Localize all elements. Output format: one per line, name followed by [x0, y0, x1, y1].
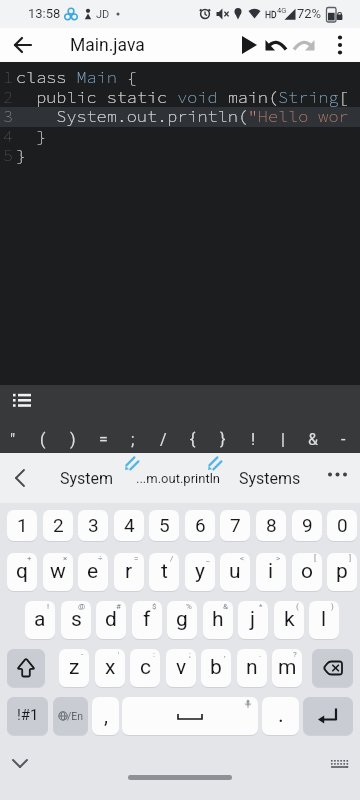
button[interactable]: c — [130, 649, 160, 687]
button[interactable]: n — [237, 649, 267, 687]
button[interactable] — [326, 755, 356, 781]
staticText: & — [308, 430, 318, 449]
staticText: c — [140, 655, 151, 680]
button[interactable]: { — [178, 426, 208, 452]
staticText: - — [81, 650, 84, 659]
staticText: < — [240, 554, 245, 563]
button[interactable] — [326, 28, 354, 62]
button[interactable] — [6, 28, 42, 62]
staticText: } — [220, 430, 226, 449]
button[interactable]: x — [95, 649, 125, 687]
button[interactable] — [320, 461, 356, 495]
button[interactable]: o — [292, 553, 322, 591]
staticText: 2 — [3, 86, 14, 107]
button[interactable]: 5 — [149, 510, 179, 541]
button[interactable]: h — [203, 601, 233, 639]
button[interactable]: / — [148, 426, 178, 452]
staticText: z — [69, 655, 80, 680]
button[interactable]: ; — [118, 426, 148, 452]
button[interactable] — [4, 463, 36, 493]
staticText: " — [10, 430, 16, 449]
button[interactable]: d — [96, 601, 126, 639]
staticText: [ — [314, 554, 317, 563]
button[interactable]: ) — [58, 426, 88, 452]
staticText: & — [223, 602, 228, 611]
button[interactable]: - — [328, 426, 358, 452]
button[interactable]: 9 — [292, 510, 322, 541]
staticText: t — [161, 559, 168, 584]
staticText: r — [125, 559, 133, 584]
button[interactable]: f — [132, 601, 162, 639]
button[interactable]: i — [256, 553, 286, 591]
button[interactable]: t — [149, 553, 179, 591]
staticText: Main.java — [70, 35, 145, 56]
button[interactable]: g — [167, 601, 197, 639]
button[interactable]: ! — [238, 426, 268, 452]
button[interactable]: 3 — [78, 510, 108, 541]
button[interactable]: b — [201, 649, 231, 687]
button[interactable]: | — [268, 426, 298, 452]
staticText: j — [250, 607, 256, 632]
staticText: # — [116, 602, 121, 611]
staticText: × — [63, 554, 68, 563]
button[interactable]: " — [0, 426, 28, 452]
staticText: x — [105, 655, 116, 680]
button[interactable]: z — [59, 649, 89, 687]
staticText: 72% — [297, 6, 322, 21]
button[interactable]: v — [166, 649, 196, 687]
button[interactable]: l — [309, 601, 339, 639]
staticText: h — [212, 607, 224, 632]
button[interactable]: k — [274, 601, 304, 639]
button[interactable]: /En — [53, 697, 88, 735]
staticText: 1 — [3, 66, 14, 87]
button[interactable]: a — [25, 601, 55, 639]
staticText: !#1 — [17, 706, 39, 724]
button[interactable]: ( — [28, 426, 58, 452]
button[interactable]: !#1 — [7, 697, 48, 735]
button[interactable]: y — [185, 553, 215, 591]
button[interactable] — [122, 697, 258, 735]
button[interactable]: r — [114, 553, 144, 591]
button[interactable] — [234, 28, 264, 62]
button[interactable] — [7, 649, 45, 687]
staticText: % — [186, 602, 192, 611]
staticText: ...m.out.println — [136, 471, 221, 486]
button[interactable]: e — [78, 553, 108, 591]
button[interactable]: 1 — [7, 510, 37, 541]
button[interactable]: . — [262, 697, 299, 735]
button[interactable]: System — [48, 461, 126, 495]
button[interactable]: s — [61, 601, 91, 639]
button[interactable] — [6, 389, 38, 413]
button[interactable]: 6 — [185, 510, 215, 541]
staticText: y — [195, 559, 205, 584]
staticText: 5 — [159, 514, 170, 536]
button[interactable]: q — [7, 553, 37, 591]
button[interactable]: , — [92, 697, 119, 735]
button[interactable]: & — [298, 426, 328, 452]
button[interactable]: m — [272, 649, 302, 687]
button[interactable]: 4 — [114, 510, 144, 541]
button[interactable]: = — [88, 426, 118, 452]
button[interactable]: 7 — [220, 510, 250, 541]
button[interactable]: } — [208, 426, 238, 452]
staticText: 7 — [230, 514, 241, 536]
staticText: q — [16, 559, 28, 584]
button[interactable]: w — [43, 553, 73, 591]
button[interactable] — [4, 749, 38, 775]
button[interactable] — [290, 28, 318, 62]
button[interactable]: j — [238, 601, 268, 639]
button[interactable]: 8 — [256, 510, 286, 541]
staticText: } — [16, 125, 47, 146]
button[interactable]: Systems — [230, 461, 310, 495]
button[interactable]: u — [220, 553, 250, 591]
button[interactable] — [312, 649, 353, 687]
button[interactable] — [262, 28, 290, 62]
button[interactable]: ...m.out.println — [134, 461, 222, 495]
button[interactable] — [303, 697, 353, 735]
staticText: 6 — [195, 514, 206, 536]
button[interactable]: p — [327, 553, 357, 591]
staticText: n — [246, 655, 258, 680]
button[interactable]: 2 — [43, 510, 73, 541]
staticText: ; — [131, 430, 135, 449]
button[interactable]: 0 — [327, 510, 357, 541]
